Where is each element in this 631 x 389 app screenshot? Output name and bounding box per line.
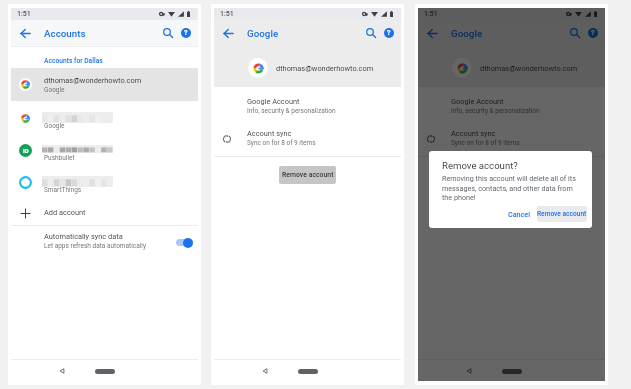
button[interactable]: Google Account (418, 92, 605, 122)
staticText: ? (387, 29, 391, 37)
staticText: Automatically sync data (44, 232, 123, 241)
button[interactable]: Account sync (418, 124, 605, 154)
button[interactable]: ID (11, 136, 198, 168)
staticText: ? (184, 29, 188, 37)
button[interactable]: Search (363, 25, 379, 41)
staticText: Add account (44, 208, 86, 217)
button[interactable]: Search (160, 25, 176, 41)
button[interactable]: Back (17, 25, 33, 41)
staticText: Google (247, 28, 279, 39)
staticText: Account sync (451, 129, 496, 138)
staticText: Accounts (44, 28, 86, 39)
button[interactable]: Help (179, 26, 193, 40)
button[interactable]: Search (567, 25, 583, 41)
staticText: Sync on for 8 of 9 items (451, 139, 520, 147)
staticText: Removing this account will delete all of… (442, 174, 582, 201)
staticText: Remove account? (442, 160, 518, 171)
button[interactable]: Automatically sync data (11, 226, 198, 256)
button[interactable]: Help (382, 26, 396, 40)
staticText: ? (591, 29, 595, 37)
staticText: Info, security & personalization (451, 107, 540, 115)
button[interactable]: Back (220, 25, 236, 41)
button[interactable]: SmartThings (11, 168, 198, 200)
button[interactable]: Account sync (214, 124, 401, 154)
button[interactable]: Cancel (505, 206, 533, 221)
staticText: Google (44, 86, 65, 94)
staticText: 1:51 (424, 10, 438, 18)
button[interactable]: Remove account (537, 206, 587, 222)
staticText: Cancel (508, 210, 531, 218)
staticText: Google Account (247, 97, 300, 106)
staticText: dthomas@wonderhowto.com (480, 64, 578, 73)
button[interactable]: Google (11, 104, 198, 136)
staticText: 1:51 (17, 10, 31, 18)
staticText: ID (23, 147, 29, 154)
staticText: SmartThings (44, 186, 82, 194)
staticText: Account sync (247, 129, 292, 138)
staticText: Accounts for Dallas (44, 57, 103, 65)
staticText: Sync on for 8 of 9 items (247, 139, 316, 147)
button[interactable]: Back (424, 25, 440, 41)
staticText: Remove account (282, 171, 334, 179)
staticText: 1:51 (220, 10, 234, 18)
staticText: dthomas@wonderhowto.com (276, 64, 374, 73)
staticText: Google (451, 28, 483, 39)
staticText: Google (44, 122, 65, 130)
button[interactable]: Add account (11, 199, 198, 227)
staticText: Remove account (537, 210, 587, 218)
button[interactable]: Remove account (279, 166, 336, 184)
staticText: Google Account (451, 97, 504, 106)
staticText: Let apps refresh data automatically (44, 242, 146, 250)
staticText: Pushbullet (44, 154, 75, 162)
button[interactable]: Help (586, 26, 600, 40)
staticText: Info, security & personalization (247, 107, 336, 115)
staticText: dthomas@wonderhowto.com (44, 76, 142, 85)
button[interactable]: dthomas@wonderhowto.com (11, 68, 198, 101)
button[interactable]: Google Account (214, 92, 401, 122)
